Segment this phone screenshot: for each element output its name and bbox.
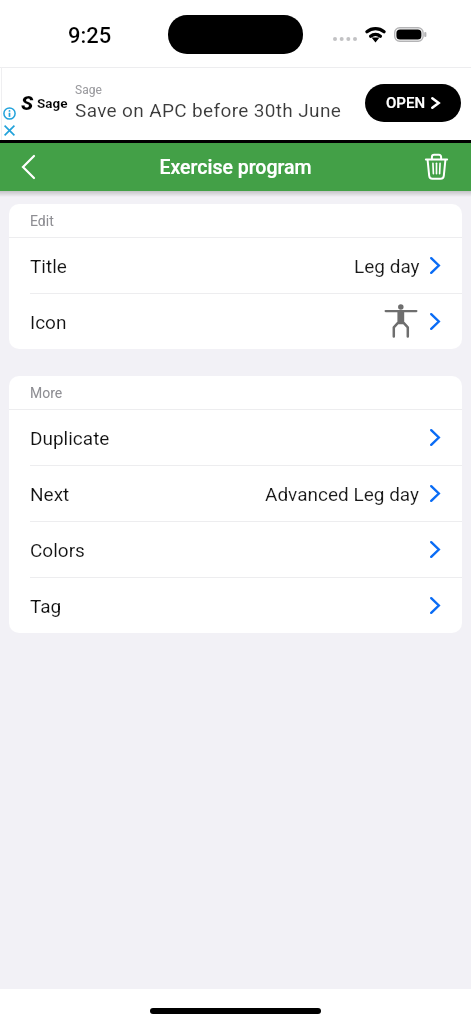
staticText: OPEN (386, 94, 426, 112)
staticText: Tag (30, 595, 62, 617)
button[interactable]: Delete (412, 143, 460, 191)
button[interactable]: Ad info (0, 67, 471, 140)
staticText: Duplicate (30, 427, 110, 449)
staticText: Colors (30, 539, 85, 561)
staticText: Edit (30, 213, 54, 229)
button[interactable]: Next (9, 466, 462, 521)
staticText: Save on APC before 30th June (75, 99, 342, 121)
staticText: More (30, 385, 63, 401)
staticText: 9:25 (68, 23, 112, 49)
other: Ad info (3, 107, 16, 120)
button[interactable]: OPEN (365, 84, 461, 122)
staticText: S (21, 91, 34, 114)
staticText: Sage (37, 95, 68, 111)
button[interactable]: Icon (9, 294, 462, 349)
staticText: Advanced Leg day (265, 483, 420, 505)
staticText: Title (30, 255, 67, 277)
staticText: Next (30, 483, 70, 505)
button[interactable]: Title (9, 238, 462, 293)
button[interactable]: Back (4, 143, 52, 191)
staticText: Exercise program (159, 156, 312, 179)
staticText: Icon (30, 311, 67, 333)
button[interactable]: Duplicate (9, 410, 462, 465)
button[interactable]: Colors (9, 522, 462, 577)
staticText: Leg day (354, 255, 420, 277)
other: Close ad (4, 125, 15, 136)
button[interactable]: Tag (9, 578, 462, 633)
staticText: Sage (75, 83, 102, 97)
